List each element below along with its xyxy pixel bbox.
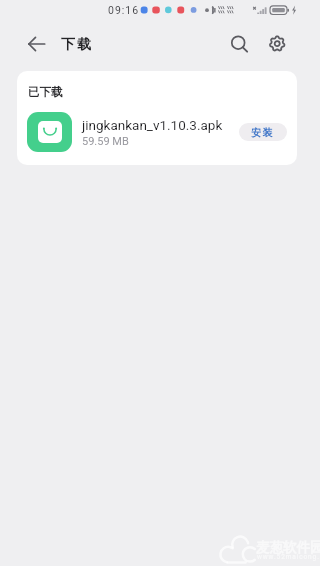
button[interactable]: 安装 bbox=[239, 123, 287, 141]
staticText: 麦葱软件园 bbox=[256, 539, 320, 556]
staticText: www.52maicong.com bbox=[257, 553, 320, 561]
staticText: 59.59 MB bbox=[82, 135, 129, 148]
button[interactable]: Settings bbox=[260, 27, 293, 60]
button[interactable]: jingkankan_v1.10.3.apk bbox=[17, 106, 297, 158]
staticText: 已下载 bbox=[28, 85, 63, 99]
button[interactable]: Search bbox=[221, 26, 254, 59]
button[interactable]: Back bbox=[19, 26, 54, 61]
staticText: 安装 bbox=[251, 126, 275, 139]
staticText: 下载 bbox=[60, 36, 92, 54]
staticText: 09:16 bbox=[108, 4, 140, 16]
staticText: jingkankan_v1.10.3.apk bbox=[82, 117, 223, 133]
